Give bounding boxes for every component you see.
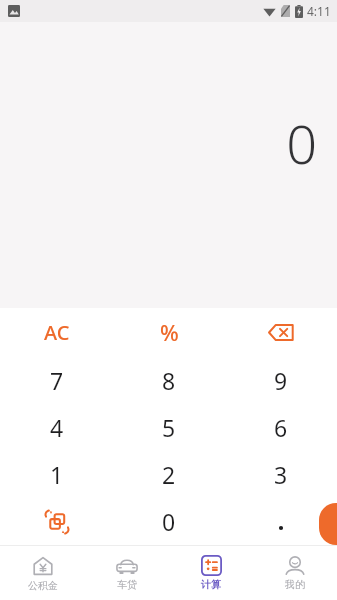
staticText: AC [44,319,70,346]
button[interactable]: Equals [319,503,337,545]
staticText: 0 [286,106,317,180]
button[interactable] [225,498,337,545]
staticText: 5 [162,412,176,443]
staticText: 4:11 [307,3,331,19]
staticText: 2 [162,459,176,490]
staticText: 7 [50,365,64,396]
staticText: 0 [162,506,176,537]
staticText: 我的 [285,578,305,591]
button[interactable]: 0 [113,498,225,545]
staticText: 3 [274,459,288,490]
button[interactable]: 9 [225,356,337,404]
button[interactable]: % [113,308,225,356]
button[interactable]: 7 [0,356,113,404]
button[interactable]: Backspace [225,308,337,356]
button[interactable]: 计算 [169,546,253,600]
button[interactable]: 我的 [253,546,337,600]
button[interactable]: Convert [0,498,113,545]
staticText: 4 [50,412,64,443]
button[interactable]: 4 [0,404,113,451]
button[interactable]: 3 [225,451,337,498]
staticText: 6 [274,412,288,443]
button[interactable]: 2 [113,451,225,498]
staticText: 9 [274,365,288,396]
staticText: 1 [50,459,64,490]
button[interactable]: 6 [225,404,337,451]
staticText: 8 [162,365,176,396]
button[interactable]: AC [0,308,113,356]
button[interactable]: 1 [0,451,113,498]
button[interactable]: 8 [113,356,225,404]
staticText: 公积金 [28,579,58,592]
button[interactable]: 车贷 [85,546,169,600]
staticText: 计算 [201,578,221,591]
staticText: 车贷 [117,578,137,591]
button[interactable]: 公积金 [0,546,85,600]
button[interactable]: 5 [113,404,225,451]
staticText: % [160,317,179,347]
